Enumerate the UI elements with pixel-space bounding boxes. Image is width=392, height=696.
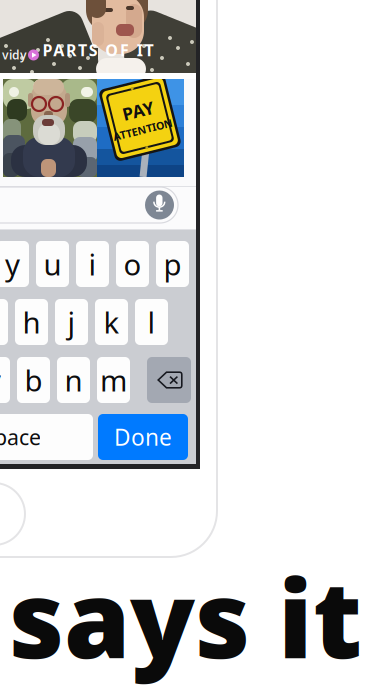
button[interactable]: p [156, 241, 189, 287]
button[interactable]: k [95, 299, 128, 345]
staticText: Done [114, 422, 172, 452]
staticText: o [123, 244, 141, 283]
button[interactable]: Delete [147, 357, 191, 403]
button[interactable]: h [15, 299, 48, 345]
staticText: says it [9, 546, 362, 688]
button[interactable]: n [57, 357, 90, 403]
button[interactable]: u [36, 241, 69, 287]
button[interactable]: j [55, 299, 88, 345]
staticText: m [100, 360, 127, 399]
staticText: vidy [2, 47, 27, 63]
staticText: i [88, 244, 96, 283]
staticText: y [5, 244, 20, 283]
staticText: ATTENTION [109, 123, 170, 137]
staticText: v [0, 360, 1, 399]
button[interactable]: b [17, 357, 50, 403]
staticText: u [43, 244, 61, 283]
button[interactable]: i [76, 241, 109, 287]
button[interactable]: v [0, 357, 10, 403]
staticText: b [24, 360, 42, 399]
staticText: l [147, 302, 155, 341]
button[interactable]: Done [98, 414, 188, 460]
staticText: p [163, 244, 181, 283]
button[interactable]: l [135, 299, 168, 345]
staticText: PARTS OF IT [42, 39, 153, 61]
staticText: j [67, 302, 75, 341]
staticText: h [22, 302, 40, 341]
button[interactable]: o [116, 241, 149, 287]
staticText: n [64, 360, 82, 399]
staticText: space [0, 423, 41, 451]
button[interactable]: y [0, 241, 29, 287]
staticText: k [103, 302, 119, 341]
button[interactable]: m [97, 357, 130, 403]
button[interactable]: space [0, 414, 93, 460]
staticText: PAY [124, 99, 156, 122]
button[interactable]: g [0, 299, 8, 345]
button[interactable]: Record video reply [0, 187, 178, 223]
